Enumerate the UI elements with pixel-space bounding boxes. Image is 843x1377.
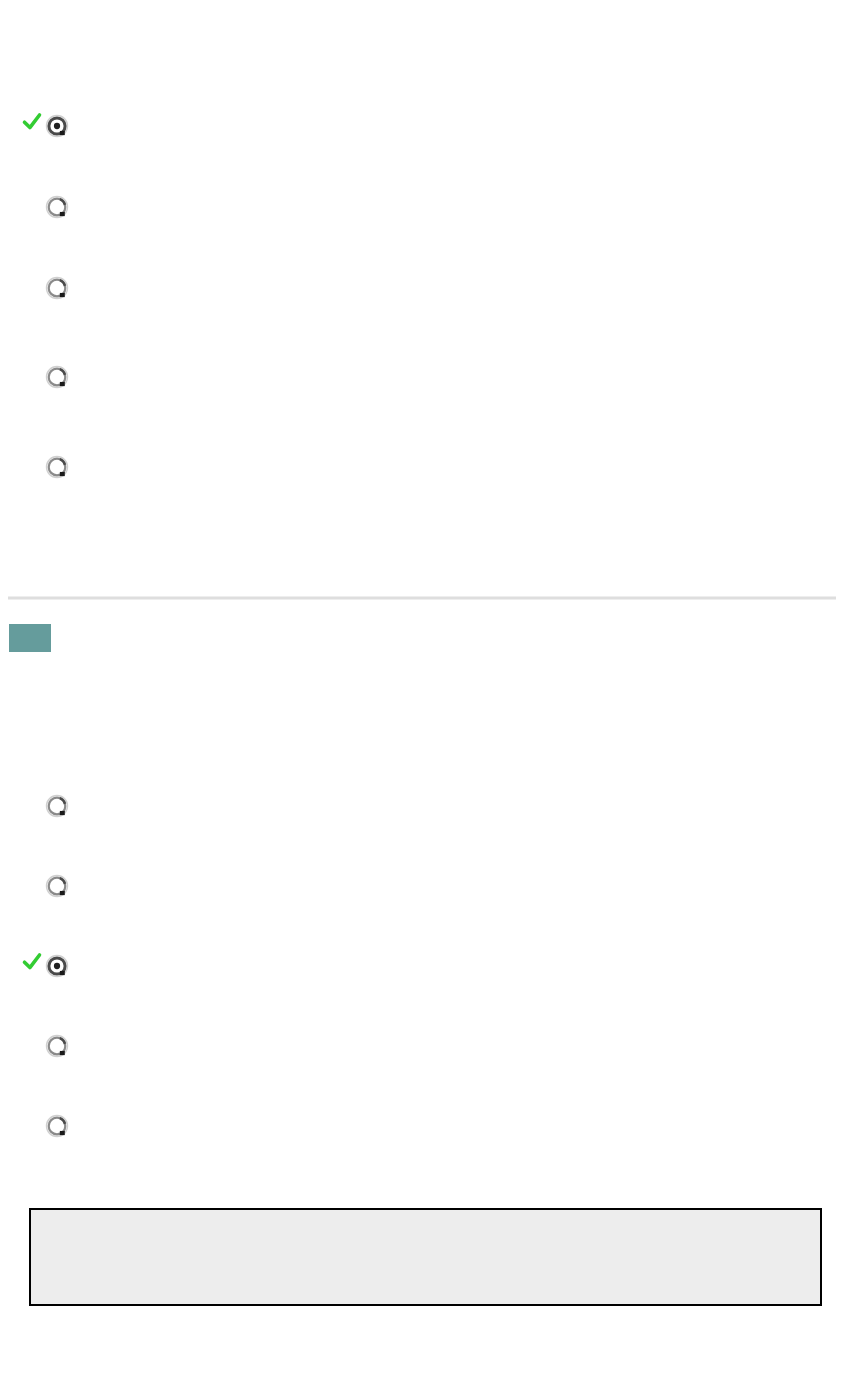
button[interactable]: Question 1 option 2 [43,193,71,221]
button[interactable]: Question 1 option 4 [43,363,71,391]
button[interactable]: Question 2 option 1 [43,792,71,820]
button[interactable]: Question 2 option 2 [43,872,71,900]
button[interactable]: Question 1 option 5 [43,453,71,481]
button[interactable]: Question 2 option 5 [43,1112,71,1140]
button[interactable]: Question 2 option 3 [43,952,71,980]
button[interactable]: Answer explanation area [30,1209,821,1305]
button[interactable]: Question 2 option 4 [43,1032,71,1060]
button[interactable]: Question 1 option 1 [43,112,71,140]
button[interactable]: Question 1 option 3 [43,274,71,302]
